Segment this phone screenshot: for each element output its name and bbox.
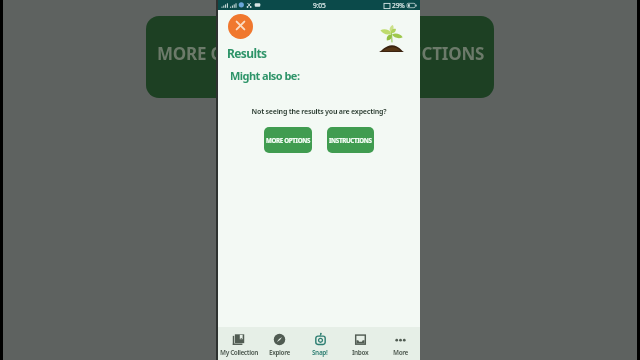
button[interactable]: My Collection [218, 327, 259, 360]
staticText: Snap! [312, 348, 328, 357]
staticText: 29% [392, 1, 405, 10]
staticText: Might also be: [230, 68, 300, 83]
button[interactable]: Close [228, 14, 253, 39]
staticText: INSTRUCTIONS [329, 136, 372, 144]
button[interactable]: Snap! [300, 327, 340, 360]
staticText: Explore [269, 348, 290, 357]
staticText: More [393, 348, 408, 357]
staticText: 9:05 [313, 1, 326, 10]
staticText: Inbox [352, 348, 369, 357]
staticText: Results [227, 45, 267, 61]
button[interactable]: More [380, 327, 420, 360]
button[interactable]: INSTRUCTIONS [327, 127, 374, 153]
staticText: MORE OPTIONS [266, 136, 311, 144]
button[interactable]: Explore [259, 327, 300, 360]
staticText: Not seeing the results you are expecting… [218, 107, 420, 117]
button[interactable]: MORE OPTIONS [264, 127, 312, 153]
staticText: MORE OPTIONS [157, 42, 287, 65]
staticText: INSTRUCTIONS [359, 42, 485, 65]
staticText: My Collection [220, 348, 258, 357]
button[interactable]: Inbox [340, 327, 380, 360]
